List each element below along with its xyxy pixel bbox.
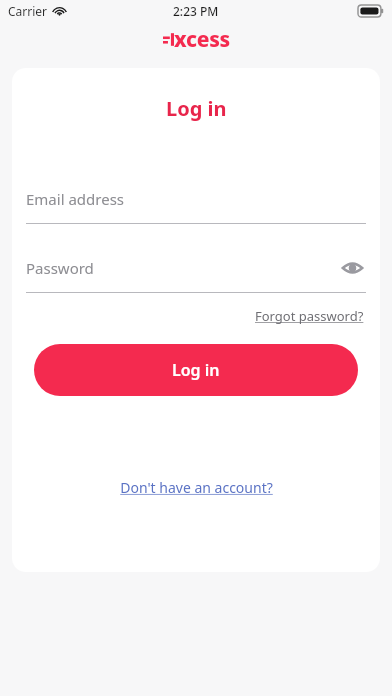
button[interactable]: Password (26, 253, 366, 283)
button[interactable]: Log in (34, 344, 358, 396)
staticText: Log in (166, 95, 227, 122)
button[interactable]: Don't have an account? (116, 474, 277, 501)
staticText: Forgot password? (255, 307, 364, 325)
staticText: 2:23 PM (173, 3, 219, 19)
staticText: Email address (26, 189, 125, 209)
button[interactable]: Show password (338, 254, 366, 282)
staticText: Don't have an account? (120, 478, 273, 497)
button[interactable]: Forgot password? (253, 304, 366, 328)
staticText: Log in (172, 359, 220, 381)
staticText: xcess (174, 25, 230, 54)
button[interactable]: Email address (26, 184, 366, 224)
staticText: Password (26, 258, 94, 278)
staticText: Carrier (8, 3, 48, 19)
